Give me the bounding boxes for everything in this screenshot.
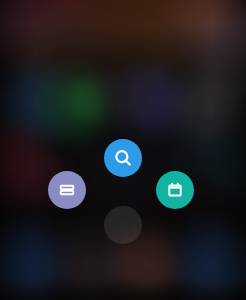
button[interactable]: Split screen [48, 171, 86, 209]
button[interactable]: Calendar [156, 171, 194, 209]
button[interactable]: Empty shortcut slot [104, 206, 142, 244]
button[interactable]: Search [104, 139, 142, 177]
